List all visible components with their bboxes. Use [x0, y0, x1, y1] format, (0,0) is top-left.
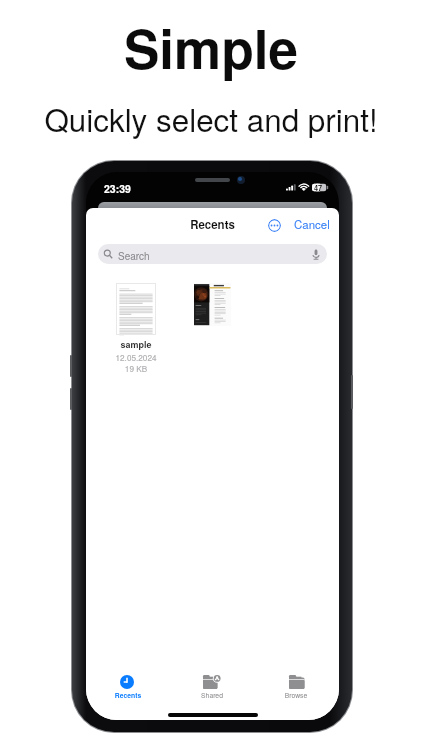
- staticText: Simple: [0, 9, 422, 85]
- staticText: sample: [86, 338, 186, 351]
- staticText: 23:39: [104, 181, 131, 196]
- button[interactable]: Browse: [254, 667, 338, 709]
- staticText: Recents: [86, 690, 170, 700]
- button[interactable]: [116, 283, 156, 335]
- staticText: Browse: [254, 690, 338, 700]
- staticText: 19 KB: [86, 363, 186, 375]
- button[interactable]: More options: [268, 219, 281, 232]
- button[interactable]: Search: [98, 244, 327, 264]
- button[interactable]: [194, 283, 231, 326]
- staticText: Search: [118, 249, 150, 263]
- staticText: Shared: [170, 690, 254, 700]
- staticText: 47: [314, 183, 323, 194]
- staticText: Quickly select and print!: [0, 96, 422, 141]
- button[interactable]: Shared: [170, 667, 254, 709]
- button[interactable]: Recents: [86, 667, 170, 709]
- other: Voice search: [312, 249, 320, 260]
- staticText: 12.05.2024: [86, 352, 186, 364]
- staticText: Recents: [86, 216, 339, 232]
- button[interactable]: Cancel: [294, 216, 330, 232]
